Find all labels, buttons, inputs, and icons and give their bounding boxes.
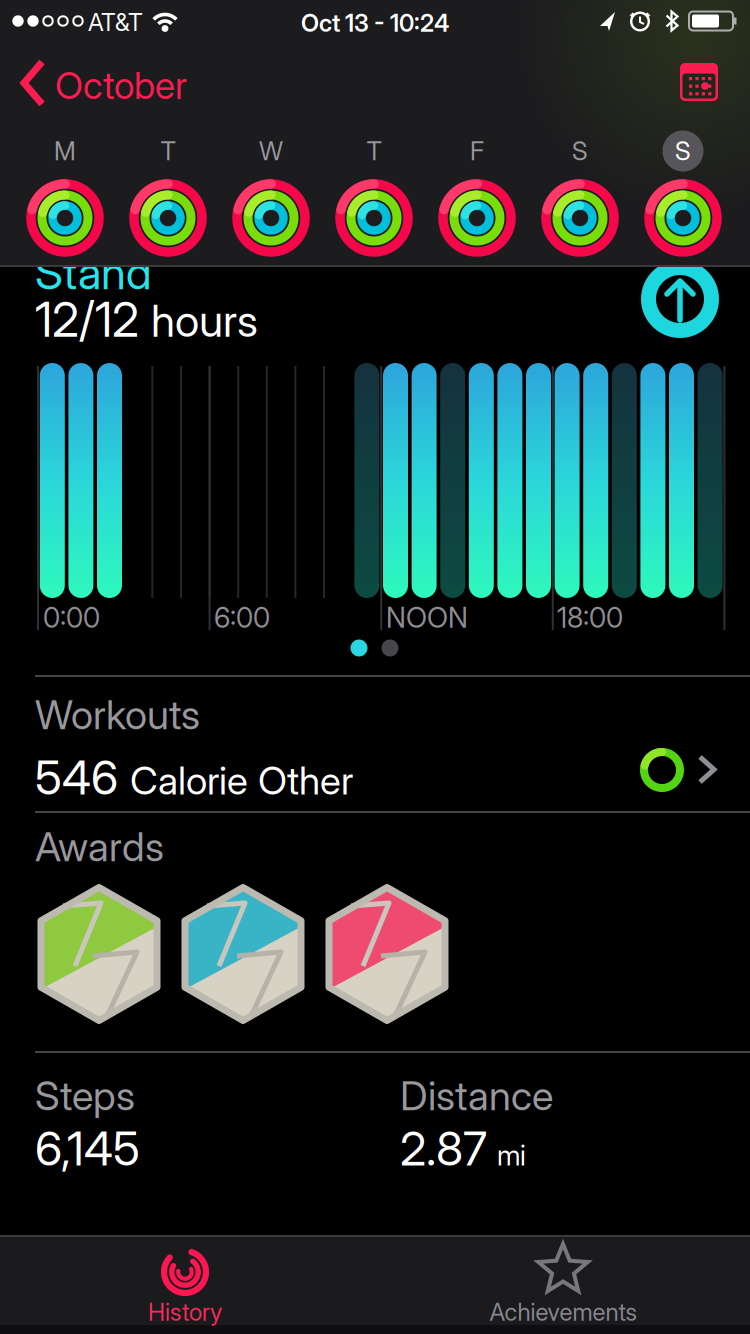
button[interactable]: History xyxy=(0,1236,375,1334)
button[interactable]: Day 5 rings xyxy=(437,178,517,258)
staticText: AT&T xyxy=(88,8,143,36)
button[interactable]: Back to October xyxy=(16,56,256,112)
staticText: 6,145 xyxy=(35,1121,140,1176)
staticText: October xyxy=(55,63,187,107)
staticText: 546 xyxy=(35,750,118,805)
staticText: W xyxy=(259,136,283,166)
staticText: Steps xyxy=(35,1072,135,1119)
button[interactable]: Day 6 rings xyxy=(540,178,620,258)
staticText: NOON xyxy=(386,601,468,634)
staticText: Workouts xyxy=(35,691,200,738)
staticText: T xyxy=(366,136,381,166)
staticText: M xyxy=(54,136,76,166)
staticText: Calorie Other xyxy=(130,758,353,803)
staticText: Oct 13 - 10:24 xyxy=(301,9,449,37)
staticText: S xyxy=(572,136,588,166)
staticText: hours xyxy=(151,295,258,347)
button[interactable]: Calendar xyxy=(667,52,721,106)
staticText: 18:00 xyxy=(557,601,623,634)
staticText: F xyxy=(470,136,484,166)
button[interactable]: Day 1 rings xyxy=(25,178,105,258)
staticText: mi xyxy=(497,1139,526,1172)
staticText: S xyxy=(675,136,691,166)
button[interactable]: Achievements xyxy=(375,1236,750,1334)
button[interactable]: 546 xyxy=(0,722,750,818)
staticText: T xyxy=(160,136,175,166)
button[interactable]: Day 2 rings xyxy=(128,178,208,258)
staticText: 6:00 xyxy=(214,601,270,634)
staticText: Achievements xyxy=(489,1298,636,1326)
staticText: Stand xyxy=(35,246,152,299)
staticText: Awards xyxy=(35,823,164,870)
button[interactable]: Day 4 rings xyxy=(334,178,414,258)
staticText: 2.87 xyxy=(400,1121,487,1176)
button[interactable]: Day 3 rings xyxy=(231,178,311,258)
button[interactable]: Page 1 of 2 xyxy=(345,634,404,662)
staticText: Distance xyxy=(400,1072,553,1119)
button[interactable]: Share xyxy=(640,259,720,339)
staticText: History xyxy=(148,1298,222,1326)
staticText: 12/12 xyxy=(35,291,139,348)
staticText: 0:00 xyxy=(43,601,100,634)
button[interactable]: Day 7 rings xyxy=(643,178,723,258)
